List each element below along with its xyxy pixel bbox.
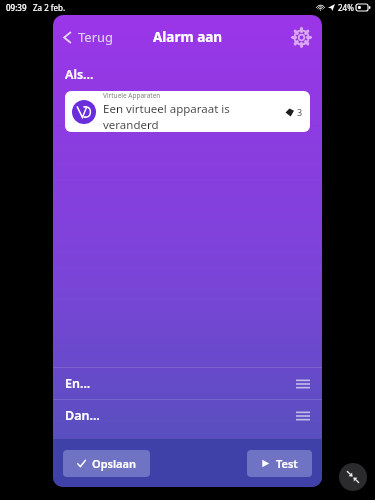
staticText: Als... bbox=[65, 66, 94, 83]
staticText: Terug bbox=[78, 28, 114, 46]
staticText: 24% bbox=[338, 2, 354, 13]
button[interactable]: Opslaan bbox=[63, 450, 150, 477]
button[interactable]: Dan... bbox=[53, 400, 322, 431]
button[interactable]: Instellingen bbox=[288, 24, 314, 50]
other: Menu bbox=[294, 407, 312, 425]
staticText: En... bbox=[65, 375, 91, 392]
staticText: Alarm aan bbox=[153, 28, 223, 46]
staticText: Za 2 feb. bbox=[33, 2, 66, 13]
staticText: 09:39 bbox=[6, 2, 27, 13]
staticText: Dan... bbox=[65, 407, 100, 424]
staticText: Test bbox=[276, 456, 298, 471]
other: Menu bbox=[294, 375, 312, 393]
staticText: 3 bbox=[297, 106, 303, 118]
button[interactable]: Terug bbox=[53, 22, 124, 52]
staticText: Opslaan bbox=[92, 456, 136, 471]
button[interactable]: En... bbox=[53, 368, 322, 399]
button[interactable]: Virtuele Apparaten bbox=[65, 91, 310, 132]
button[interactable]: Test bbox=[247, 450, 312, 477]
button[interactable]: Verklein venster bbox=[339, 463, 367, 491]
staticText: Virtuele Apparaten bbox=[103, 91, 161, 100]
staticText: Een virtueel apparaat is veranderd bbox=[103, 101, 281, 132]
